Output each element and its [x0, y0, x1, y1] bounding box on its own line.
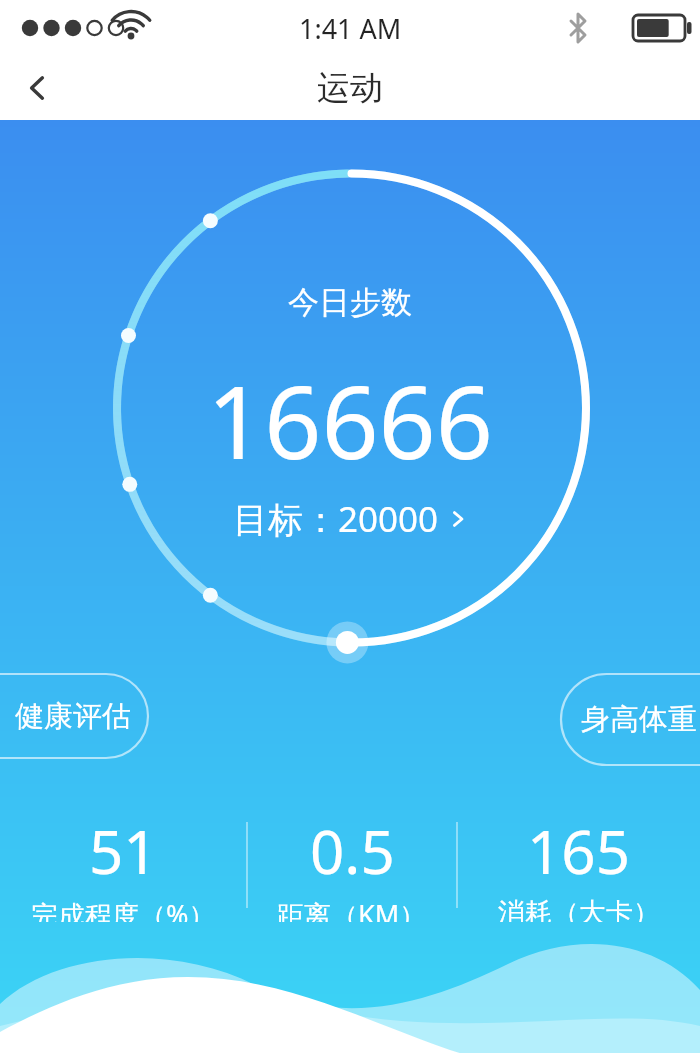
- button[interactable]: 目标：20000: [227, 492, 474, 546]
- staticText: 距离（KM）: [277, 896, 427, 922]
- button[interactable]: 身高体重: [561, 674, 700, 765]
- staticText: 165: [527, 810, 630, 892]
- button[interactable]: Back: [8, 59, 66, 117]
- staticText: 消耗（大卡）: [498, 896, 660, 922]
- button[interactable]: 0.5: [247, 810, 457, 922]
- staticText: 16666: [0, 352, 700, 488]
- staticText: 运动: [317, 67, 383, 109]
- staticText: 目标：20000: [233, 495, 439, 543]
- staticText: 1:41 AM: [299, 10, 402, 47]
- staticText: 健康评估: [15, 698, 131, 735]
- staticText: 今日步数: [0, 283, 700, 322]
- staticText: 完成程度（%）: [31, 896, 216, 922]
- staticText: 51: [89, 810, 158, 892]
- staticText: 0.5: [310, 810, 395, 892]
- button[interactable]: 健康评估: [0, 674, 148, 758]
- staticText: 身高体重: [581, 701, 697, 738]
- button[interactable]: 51: [0, 810, 247, 922]
- button[interactable]: 165: [457, 810, 700, 922]
